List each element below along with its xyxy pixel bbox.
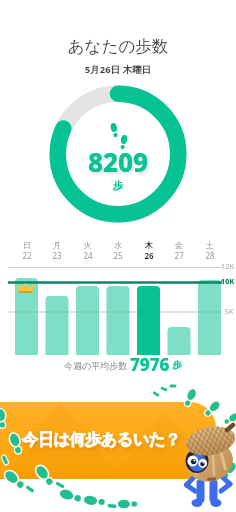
- staticText: 今週の平均歩数: [64, 359, 130, 371]
- staticText: 5K: [222, 306, 236, 316]
- staticText: 月: [42, 240, 72, 250]
- staticText: 23: [42, 250, 72, 261]
- button[interactable]: [0, 402, 216, 479]
- staticText: 25: [103, 250, 133, 261]
- staticText: 今日は何歩あるいた？: [22, 430, 181, 450]
- staticText: 5月26日 木曜日: [0, 63, 236, 76]
- staticText: 12K: [219, 261, 236, 271]
- staticText: 火: [73, 240, 103, 250]
- staticText: 土: [195, 240, 225, 250]
- staticText: 水: [103, 240, 133, 250]
- staticText: 10K: [219, 276, 236, 286]
- staticText: 歩: [0, 179, 236, 192]
- staticText: 24: [73, 250, 103, 261]
- staticText: 28: [195, 250, 225, 261]
- staticText: 8209: [0, 144, 236, 179]
- staticText: 7976: [130, 353, 170, 376]
- staticText: 22: [12, 250, 42, 261]
- staticText: 金: [164, 240, 194, 250]
- staticText: 27: [164, 250, 194, 261]
- staticText: 歩: [170, 358, 182, 371]
- staticText: 26: [134, 250, 164, 261]
- staticText: あなたの歩数: [0, 36, 236, 57]
- staticText: 日: [12, 240, 42, 250]
- staticText: 木: [134, 240, 164, 250]
